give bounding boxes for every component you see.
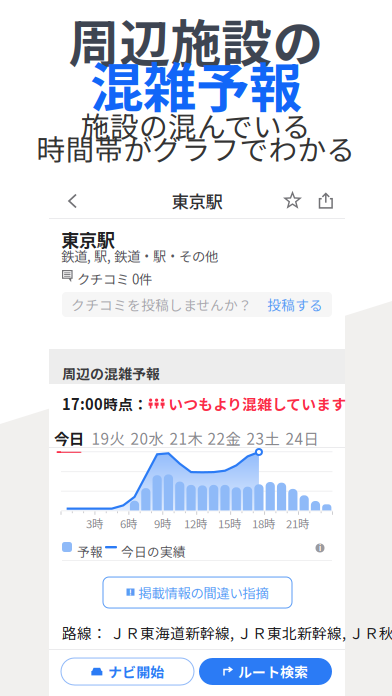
button[interactable]: Share [313, 188, 339, 214]
button[interactable]: ! [103, 577, 292, 608]
button[interactable]: ルート検索 [199, 658, 332, 685]
button[interactable]: 20水 [130, 427, 164, 453]
staticText: 20水 [130, 427, 163, 449]
staticText: 東京駅 [171, 188, 222, 214]
staticText: 予報 [77, 542, 103, 560]
staticText: 施設の混んでいる [81, 104, 311, 146]
staticText: ! [129, 588, 132, 597]
button[interactable]: 19火 [91, 427, 125, 453]
staticText: 6時 [120, 515, 137, 531]
staticText: 21時 [286, 515, 309, 531]
staticText: 混雑予報 [90, 45, 302, 123]
staticText: 今日の実績 [121, 542, 186, 560]
button[interactable]: 23土 [246, 427, 280, 453]
staticText: 17:00時点： [62, 393, 148, 414]
staticText: i [319, 543, 321, 553]
staticText: クチコミ 0件 [77, 269, 152, 288]
staticText: 周辺施設の [68, 3, 323, 77]
staticText: 3時 [86, 515, 103, 531]
staticText: 22金 [207, 427, 240, 449]
staticText: 路線： ＪＲ東海道新幹線, ＪＲ東北新幹線, ＪＲ秋 [62, 622, 392, 643]
staticText: 21木 [169, 427, 202, 449]
staticText: 時間帯がグラフでわかる [36, 127, 355, 169]
staticText: 19火 [91, 427, 124, 449]
staticText: 掲載情報の間違い指摘 [138, 583, 268, 602]
button[interactable]: 21木 [169, 427, 203, 453]
staticText: 23土 [246, 427, 279, 449]
staticText: 15時 [218, 515, 241, 531]
button[interactable]: Favorite [280, 188, 306, 214]
staticText: 24日 [285, 427, 318, 449]
staticText: 投稿する [267, 295, 323, 314]
staticText: 9時 [154, 515, 171, 531]
staticText: ナビ開始 [108, 661, 164, 682]
button[interactable]: 24日 [285, 427, 319, 453]
button[interactable]: ナビ開始 [61, 658, 194, 685]
staticText: 12時 [184, 515, 207, 531]
staticText: 東京駅 [61, 226, 115, 252]
button[interactable]: Back [58, 186, 88, 216]
staticText: 18時 [252, 515, 275, 531]
staticText: いつもより混雑しています [165, 393, 346, 414]
button[interactable]: 22金 [207, 427, 241, 453]
staticText: ルート検索 [238, 661, 308, 682]
staticText: クチコミを投稿しませんか？ [71, 295, 252, 314]
staticText: 鉄道, 駅, 鉄道・駅・その他 [61, 246, 218, 265]
button[interactable]: 今日 [52, 427, 86, 453]
button[interactable]: Info [312, 540, 328, 556]
staticText: 周辺の混雑予報 [62, 363, 160, 383]
staticText: 今日 [54, 427, 84, 449]
button[interactable]: クチコミを投稿しませんか？ [62, 292, 332, 317]
